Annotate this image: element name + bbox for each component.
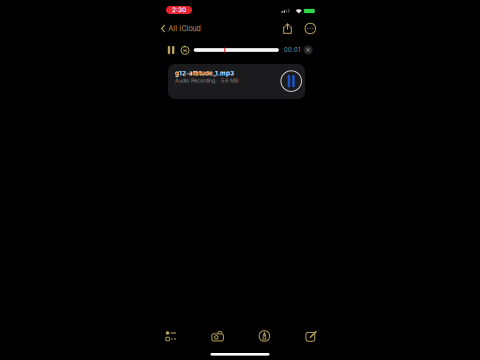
staticText: 00:01 — [284, 46, 300, 53]
staticText: Audio Recording · 5.6 MB — [175, 77, 239, 84]
button[interactable]: Checklist — [147, 326, 194, 346]
button[interactable]: Close player — [302, 44, 314, 56]
button[interactable]: All iCloud — [161, 21, 205, 36]
button[interactable]: More — [302, 21, 318, 36]
button[interactable]: Compose — [288, 326, 335, 346]
button[interactable]: g12-attitude_1.mp3 — [168, 64, 305, 99]
button[interactable]: Playback speed — [179, 44, 191, 56]
button[interactable]: Share — [280, 21, 295, 36]
button[interactable]: Camera — [194, 326, 241, 346]
button[interactable]: Pause — [166, 44, 176, 56]
staticText: 2:30 — [172, 6, 186, 14]
staticText: g12-attitude_1.mp3 — [175, 69, 234, 77]
staticText: All iCloud — [168, 24, 201, 33]
button[interactable]: Markup — [241, 326, 288, 346]
